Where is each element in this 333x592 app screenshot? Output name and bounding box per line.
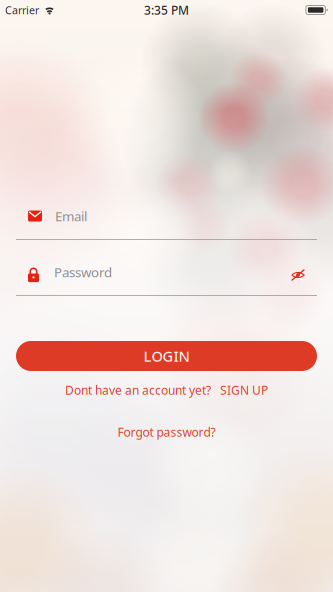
button[interactable]: Dont have an account yet? (65, 382, 211, 398)
staticText: Carrier (5, 3, 39, 17)
button[interactable]: Forgot password? (117, 424, 215, 440)
button[interactable]: LOGIN (16, 341, 317, 371)
staticText: 3:35 PM (144, 2, 189, 18)
button[interactable]: Show password (291, 266, 305, 278)
staticText: Password (54, 263, 112, 281)
button[interactable]: SIGN UP (220, 382, 268, 398)
staticText: Email (55, 207, 87, 225)
staticText: LOGIN (143, 346, 189, 366)
staticText: Dont have an account yet? (65, 382, 211, 398)
staticText: SIGN UP (220, 382, 268, 398)
staticText: Forgot password? (117, 424, 215, 440)
